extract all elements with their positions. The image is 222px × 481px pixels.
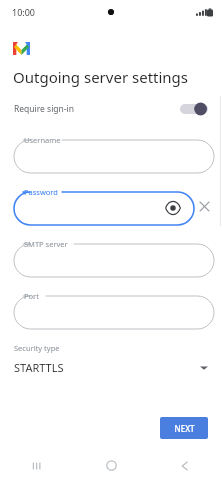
staticText: Password [24,187,58,197]
staticText: SMTP server [24,239,68,249]
button[interactable]: SMTP server [14,237,214,279]
staticText: STARTTLS [14,360,64,375]
staticText: Username [24,135,61,145]
button[interactable]: Clear password [194,196,214,216]
button[interactable]: Username [14,133,214,175]
staticText: Outgoing server settings [13,67,189,87]
button[interactable]: Security type [0,343,222,375]
button[interactable]: Home [74,450,148,481]
staticText: Require sign-in [14,103,75,115]
staticText: Port [24,291,39,301]
staticText: NEXT [174,423,195,434]
staticText: Security type [14,343,60,353]
button[interactable]: Port [14,289,214,331]
button[interactable]: Recent apps [0,450,74,481]
button[interactable]: Show password [165,200,181,216]
button[interactable]: Password [14,185,194,227]
other: Open security type menu [200,365,208,371]
button[interactable]: NEXT [160,417,208,439]
button[interactable]: Require sign-in [0,96,222,122]
button[interactable]: Back [148,450,222,481]
staticText: 10:00 [12,6,36,18]
